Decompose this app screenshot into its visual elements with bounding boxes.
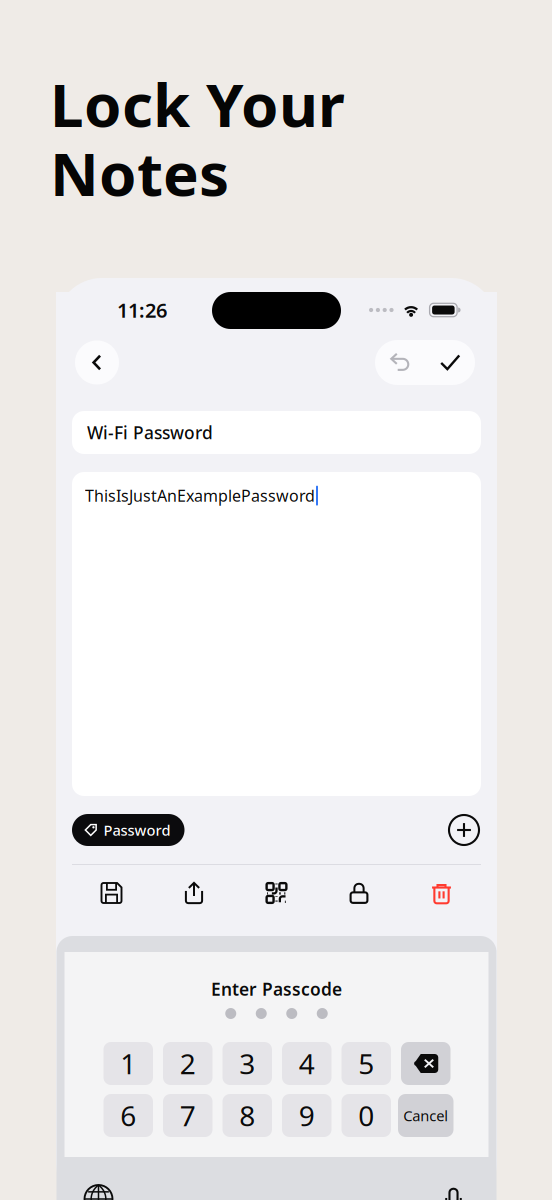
button[interactable]: 4 bbox=[282, 1042, 331, 1085]
staticText: 7 bbox=[180, 1097, 196, 1134]
staticText: ThisIsJustAnExamplePassword bbox=[85, 485, 315, 506]
button[interactable]: Save bbox=[79, 871, 144, 915]
staticText: Enter Passcode bbox=[211, 977, 342, 1000]
staticText: Notes bbox=[50, 133, 229, 213]
button[interactable]: Add tag bbox=[447, 813, 481, 847]
button[interactable]: Password bbox=[72, 814, 184, 846]
button[interactable]: Delete bbox=[401, 1042, 450, 1085]
staticText: 11:26 bbox=[117, 297, 167, 323]
button[interactable]: 5 bbox=[341, 1042, 391, 1085]
button[interactable]: Delete note bbox=[409, 871, 474, 915]
button[interactable]: Dictate bbox=[431, 1177, 475, 1200]
button[interactable]: QR code bbox=[244, 871, 309, 915]
button[interactable]: 1 bbox=[103, 1042, 153, 1085]
button[interactable]: 6 bbox=[103, 1094, 153, 1137]
button[interactable]: 3 bbox=[222, 1042, 272, 1085]
staticText: Wi-Fi Password bbox=[87, 421, 213, 444]
staticText: 6 bbox=[120, 1097, 136, 1134]
staticText: 1 bbox=[120, 1045, 136, 1082]
button[interactable]: 2 bbox=[163, 1042, 212, 1085]
button[interactable]: Back bbox=[75, 340, 119, 384]
button[interactable]: Lock note bbox=[326, 871, 391, 915]
staticText: Password bbox=[103, 820, 170, 840]
button[interactable]: Next keyboard bbox=[76, 1177, 120, 1200]
staticText: 9 bbox=[299, 1097, 315, 1134]
button[interactable]: 8 bbox=[222, 1094, 272, 1137]
staticText: Lock Your bbox=[50, 64, 345, 144]
button[interactable]: Undo bbox=[375, 340, 425, 385]
staticText: 5 bbox=[358, 1045, 374, 1082]
button[interactable]: 7 bbox=[163, 1094, 212, 1137]
button[interactable]: Share bbox=[161, 871, 226, 915]
staticText: 3 bbox=[239, 1045, 255, 1082]
button[interactable]: Save note bbox=[425, 340, 475, 385]
staticText: Cancel bbox=[403, 1106, 448, 1125]
button[interactable]: 0 bbox=[341, 1094, 391, 1137]
staticText: 0 bbox=[358, 1097, 374, 1134]
staticText: 4 bbox=[299, 1045, 315, 1082]
staticText: 2 bbox=[180, 1045, 196, 1082]
staticText: 8 bbox=[239, 1097, 255, 1134]
button[interactable]: 9 bbox=[282, 1094, 331, 1137]
button[interactable]: Cancel bbox=[401, 1094, 450, 1137]
